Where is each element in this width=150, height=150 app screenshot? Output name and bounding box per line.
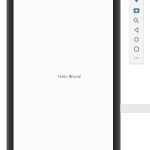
button[interactable] (130, 26, 143, 35)
button[interactable] (130, 55, 143, 64)
staticText: Hello World! (58, 74, 82, 79)
button[interactable] (130, 45, 143, 54)
button[interactable] (130, 8, 143, 17)
button[interactable] (130, 17, 143, 26)
button[interactable] (130, 36, 143, 45)
